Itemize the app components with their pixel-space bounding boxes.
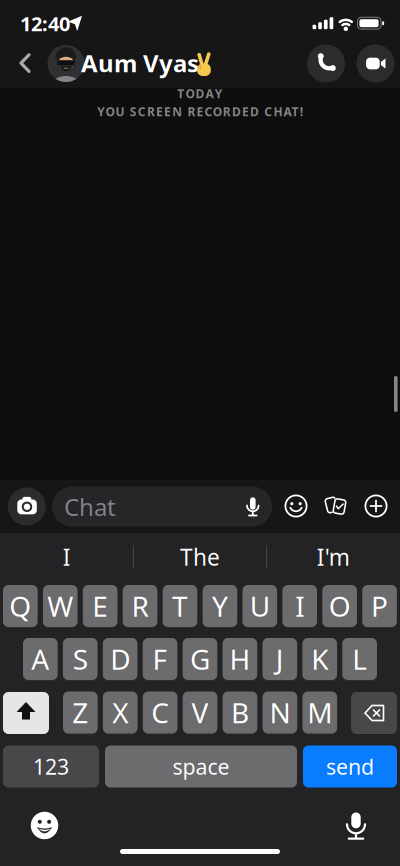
staticText: S: [73, 640, 88, 678]
staticText: I: [63, 542, 71, 572]
staticText: 123: [33, 752, 69, 781]
button[interactable]: The: [140, 539, 260, 575]
button[interactable]: V: [183, 691, 217, 734]
staticText: Aum Vyas: [81, 47, 199, 79]
staticText: G: [190, 640, 210, 678]
button[interactable]: Shift: [3, 692, 49, 734]
staticText: B: [231, 694, 249, 731]
button[interactable]: E: [83, 585, 117, 628]
button[interactable]: I: [7, 539, 127, 575]
staticText: N: [269, 694, 290, 731]
staticText: P: [371, 587, 388, 625]
button[interactable]: Chat: [52, 486, 272, 526]
button[interactable]: F: [143, 638, 177, 681]
button[interactable]: G: [183, 638, 217, 681]
staticText: T: [172, 587, 188, 625]
staticText: I: [295, 587, 304, 625]
staticText: O: [329, 587, 351, 625]
button[interactable]: A: [23, 638, 58, 681]
button[interactable]: D: [103, 638, 137, 681]
button[interactable]: R: [123, 585, 157, 628]
button[interactable]: Delete: [351, 692, 397, 734]
staticText: TODAY: [177, 85, 223, 101]
button[interactable]: Emoji: [30, 811, 59, 840]
button[interactable]: Camera: [8, 487, 46, 525]
button[interactable]: Y: [203, 585, 237, 628]
staticText: M: [307, 694, 332, 731]
staticText: L: [352, 640, 367, 678]
button[interactable]: T: [163, 585, 197, 628]
staticText: A: [31, 640, 49, 678]
staticText: X: [112, 694, 128, 731]
button[interactable]: P: [362, 585, 397, 628]
button[interactable]: Video call: [356, 44, 394, 82]
button[interactable]: 123: [3, 745, 99, 787]
button[interactable]: I'm: [273, 539, 393, 575]
staticText: YOU SCREEN RECORDED CHAT!: [97, 103, 303, 119]
button[interactable]: N: [263, 691, 297, 734]
button[interactable]: U: [242, 585, 277, 628]
button[interactable]: B: [223, 691, 257, 734]
staticText: D: [110, 640, 130, 678]
button[interactable]: More: [363, 493, 388, 518]
button[interactable]: M: [302, 691, 337, 734]
staticText: V: [192, 694, 209, 731]
staticText: E: [92, 587, 108, 625]
staticText: The: [180, 542, 220, 572]
staticText: K: [311, 640, 328, 678]
button[interactable]: Aum Vyas: [46, 41, 216, 85]
button[interactable]: W: [43, 585, 77, 628]
button[interactable]: H: [223, 638, 257, 681]
staticText: I'm: [317, 542, 350, 572]
staticText: Y: [212, 587, 228, 625]
button[interactable]: C: [143, 691, 177, 734]
staticText: J: [276, 640, 284, 678]
button[interactable]: Z: [63, 691, 98, 734]
staticText: F: [153, 640, 168, 678]
staticText: U: [250, 587, 270, 625]
button[interactable]: L: [342, 638, 377, 681]
button[interactable]: K: [302, 638, 337, 681]
staticText: C: [151, 694, 169, 731]
staticText: send: [326, 752, 374, 781]
button[interactable]: Q: [3, 585, 38, 628]
staticText: space: [172, 752, 229, 781]
button[interactable]: space: [105, 745, 297, 787]
button[interactable]: Dictation: [341, 811, 371, 840]
staticText: 12:40: [20, 10, 70, 37]
button[interactable]: Stickers: [283, 493, 308, 518]
button[interactable]: J: [262, 638, 297, 681]
button[interactable]: I: [282, 585, 317, 628]
button[interactable]: send: [303, 745, 397, 787]
staticText: R: [132, 587, 149, 625]
button[interactable]: X: [103, 691, 137, 734]
button[interactable]: Voice call: [307, 44, 345, 82]
staticText: Q: [9, 587, 31, 625]
button[interactable]: O: [322, 585, 357, 628]
button[interactable]: Memories: [323, 492, 349, 519]
staticText: H: [229, 640, 250, 678]
button[interactable]: Back: [17, 53, 37, 74]
staticText: W: [47, 587, 73, 625]
staticText: Chat: [64, 491, 116, 523]
staticText: Z: [72, 694, 88, 731]
button[interactable]: S: [63, 638, 97, 681]
